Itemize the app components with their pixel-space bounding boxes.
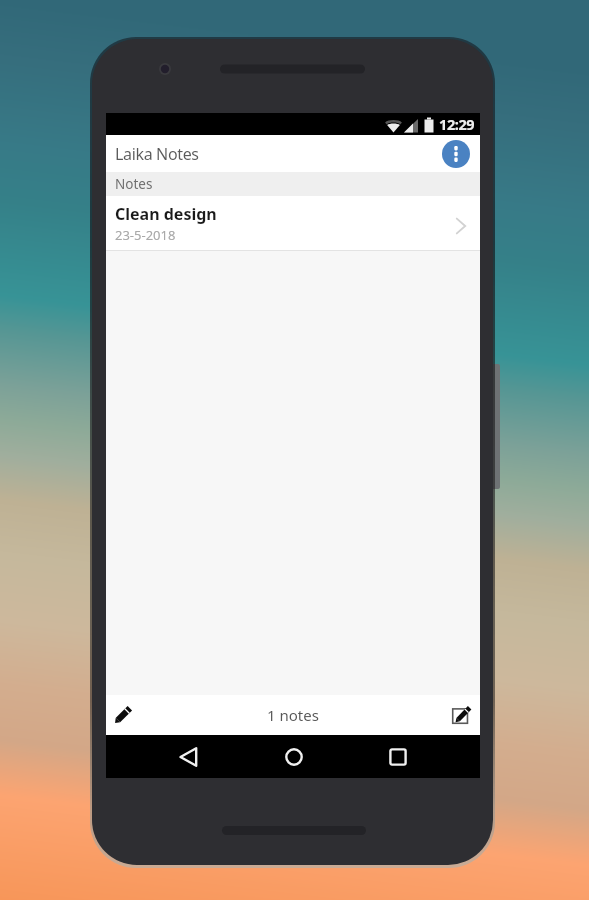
staticText: 12:29: [439, 114, 475, 134]
button[interactable]: Back: [167, 735, 210, 778]
button[interactable]: Edit: [110, 702, 136, 728]
button[interactable]: More options: [442, 140, 470, 168]
staticText: Notes: [115, 175, 153, 193]
staticText: Laika Notes: [115, 143, 199, 165]
staticText: 1 notes: [267, 705, 319, 725]
button[interactable]: Clean design: [106, 196, 480, 251]
button[interactable]: Recent apps: [376, 735, 419, 778]
button[interactable]: Home: [272, 735, 315, 778]
button[interactable]: New note: [446, 700, 476, 730]
staticText: Clean design: [115, 203, 217, 225]
staticText: 23-5-2018: [115, 226, 176, 244]
